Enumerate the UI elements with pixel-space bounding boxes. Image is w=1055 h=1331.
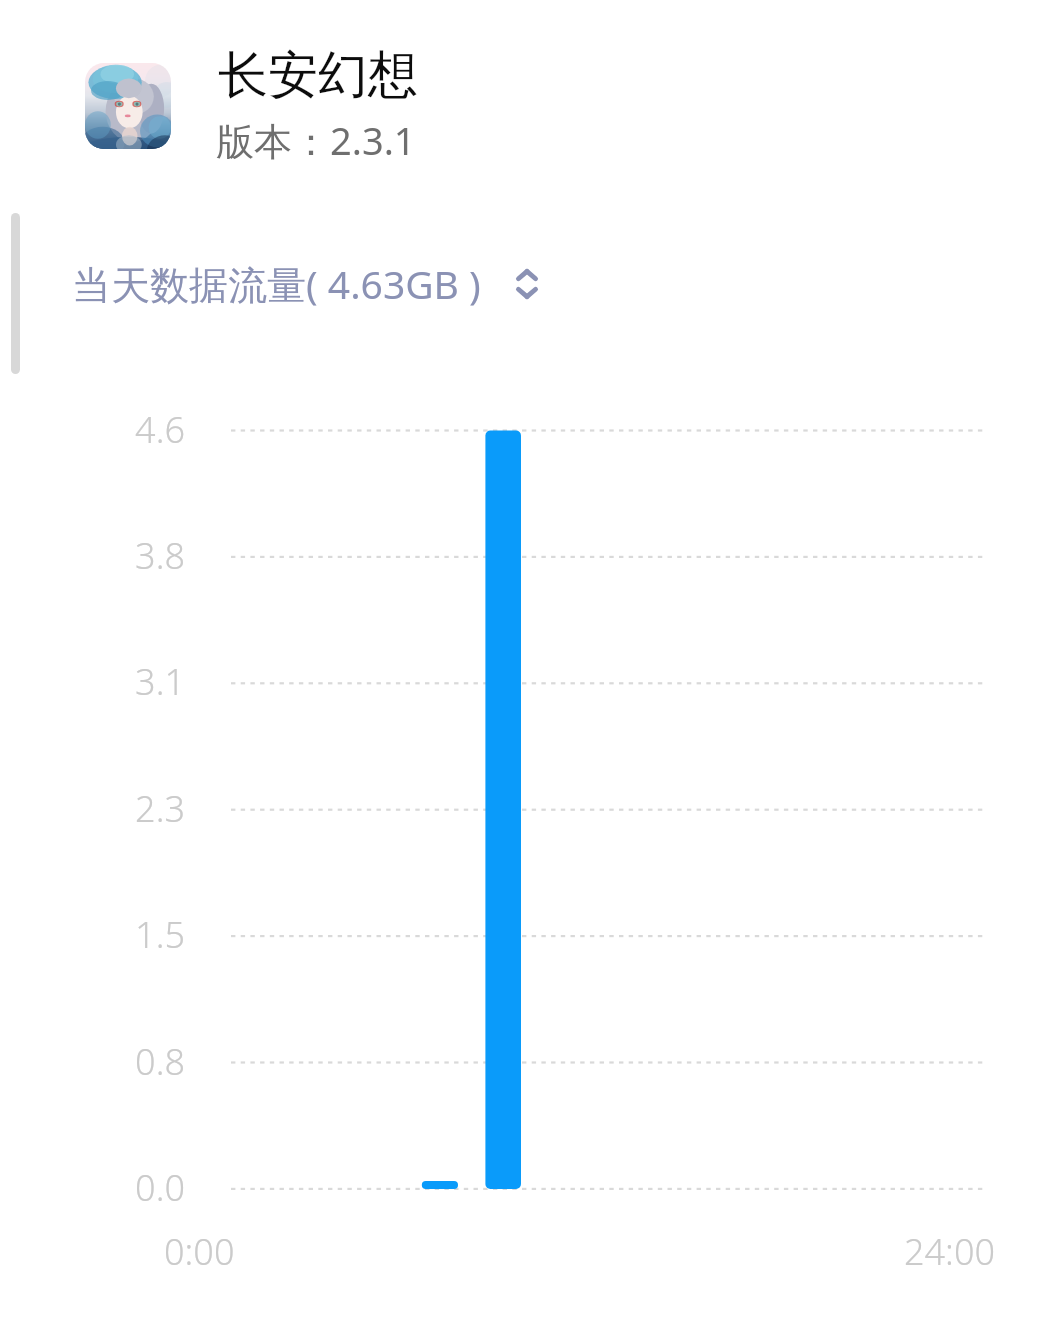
staticText: 长安幻想	[218, 44, 418, 107]
button[interactable]: 当天数据流量( 4.63GB )	[72, 257, 549, 310]
staticText: 3.1	[135, 657, 185, 706]
button[interactable]: App icon	[85, 63, 171, 149]
staticText: 0:00	[164, 1227, 235, 1276]
staticText: 版本：2.3.1	[216, 114, 416, 166]
staticText: 24:00	[904, 1227, 996, 1276]
staticText: 2.3	[135, 784, 185, 833]
staticText: 1.5	[135, 910, 185, 959]
other: Switch data range	[505, 260, 549, 308]
staticText: 0.8	[135, 1037, 185, 1086]
staticText: 当天数据流量( 4.63GB )	[72, 257, 481, 310]
staticText: 0.0	[135, 1163, 185, 1212]
staticText: 4.6	[135, 405, 185, 454]
staticText: 3.8	[135, 531, 185, 580]
